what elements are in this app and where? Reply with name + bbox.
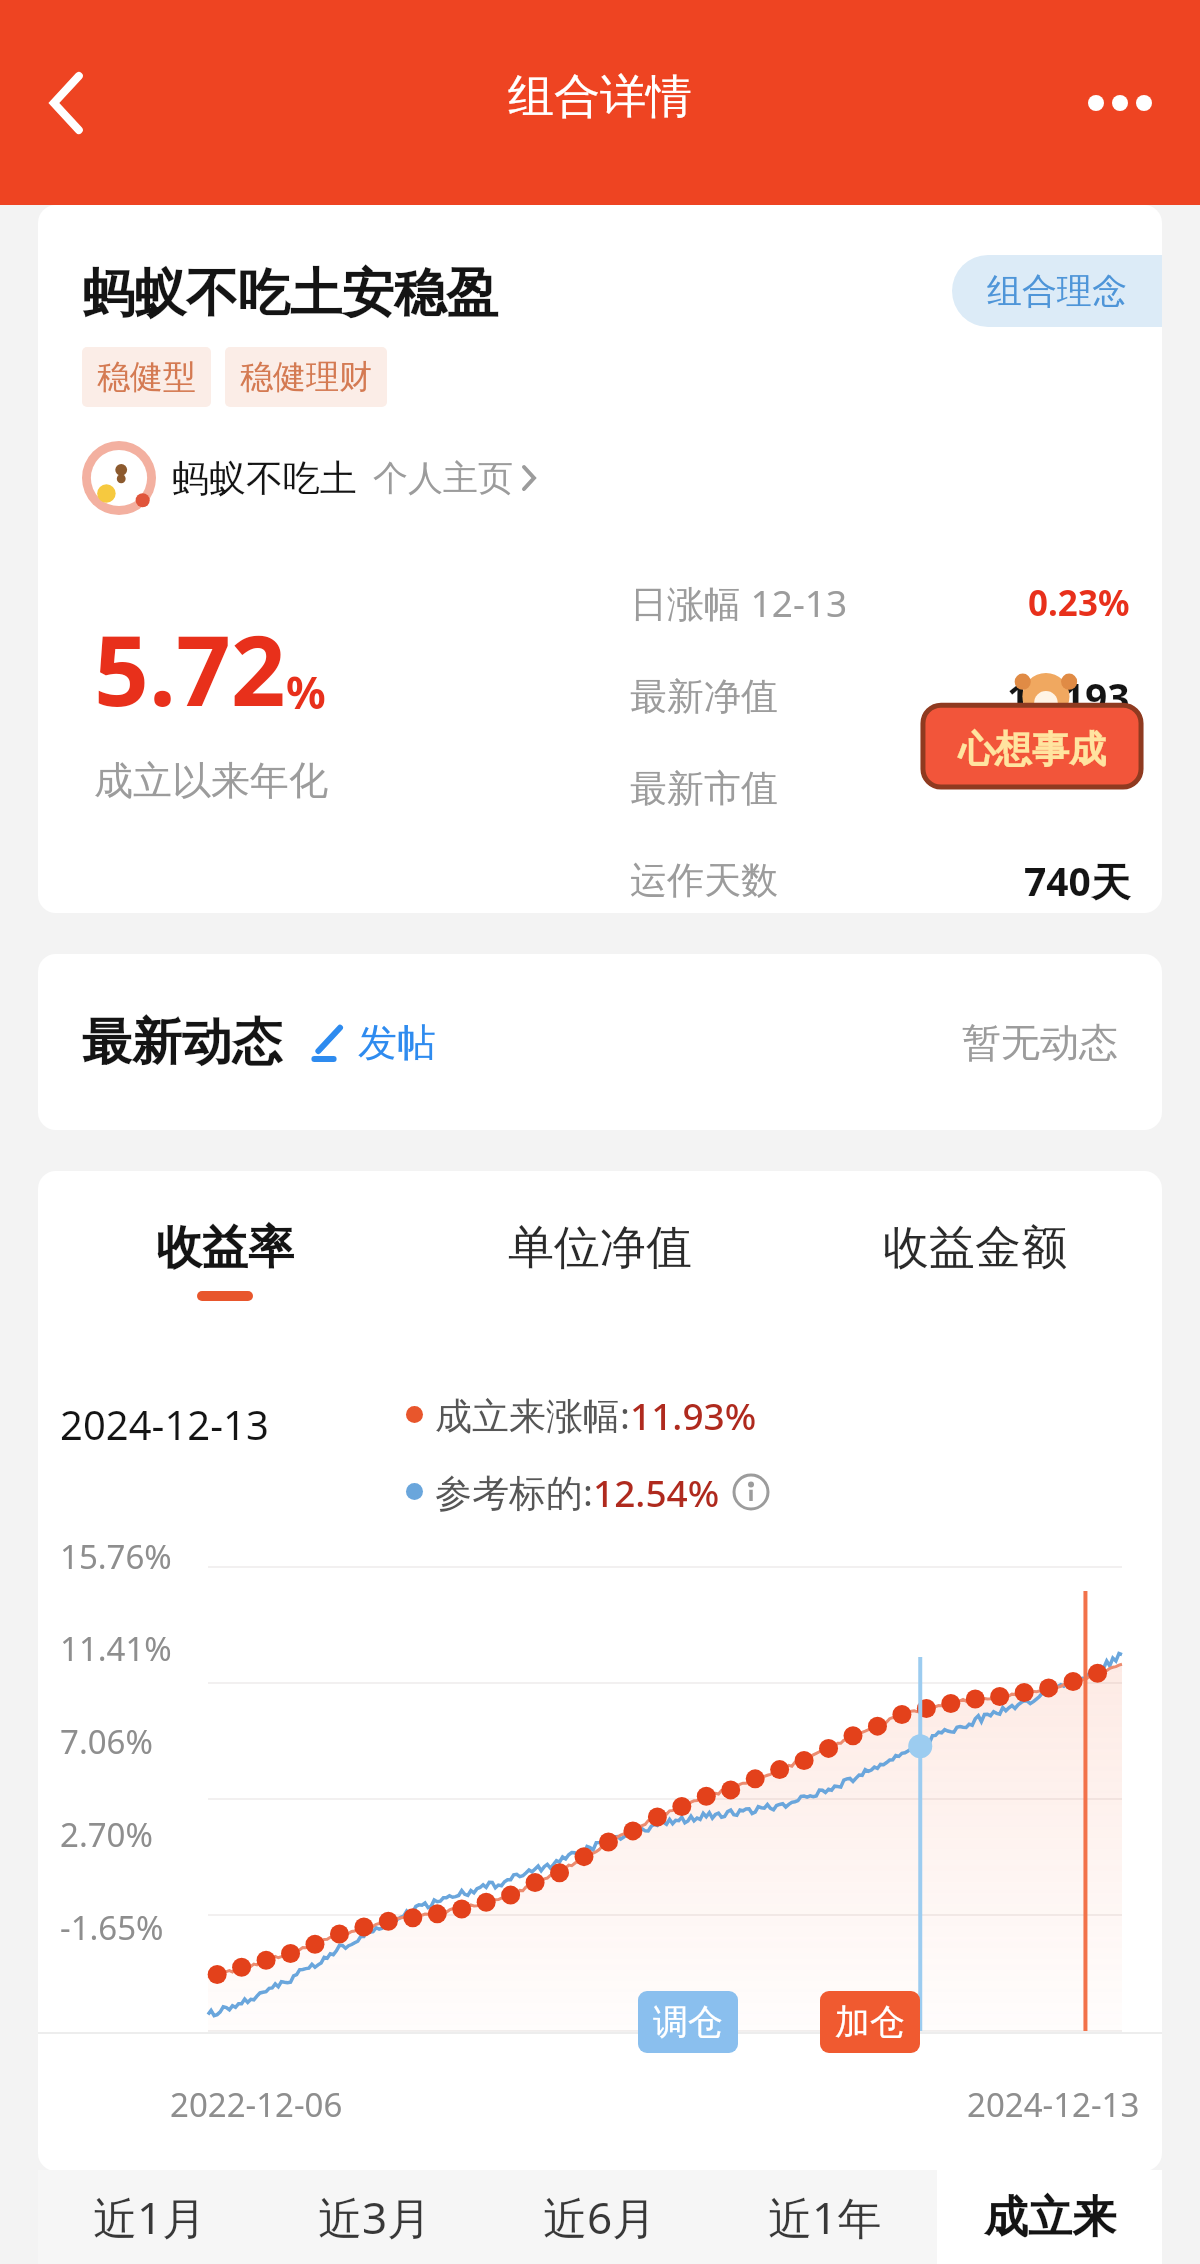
staticText: 稳健型 bbox=[97, 356, 196, 398]
button[interactable]: 收益金额 bbox=[787, 1219, 1162, 1291]
staticText: 近6月 bbox=[543, 2187, 657, 2247]
staticText: 最新净值 bbox=[630, 673, 778, 720]
staticText: 2024-12-13 bbox=[967, 2082, 1140, 2127]
button[interactable]: 发帖 bbox=[308, 1018, 436, 1067]
staticText: 暂无动态 bbox=[962, 1018, 1118, 1067]
staticText: 调仓 bbox=[653, 2000, 723, 2044]
staticText: 成立来涨幅: bbox=[435, 1389, 630, 1440]
staticText: 发帖 bbox=[358, 1018, 436, 1067]
button[interactable]: Info bbox=[732, 1473, 770, 1511]
staticText: 最新市值 bbox=[630, 765, 778, 812]
button[interactable]: Back bbox=[14, 51, 118, 155]
staticText: 心想事成 bbox=[958, 726, 1106, 773]
staticText: 740天 bbox=[1024, 854, 1130, 907]
staticText: 0.23% bbox=[1028, 579, 1130, 627]
staticText: 2.70% bbox=[60, 1812, 153, 1857]
staticText: 2022-12-06 bbox=[170, 2082, 343, 2127]
button[interactable]: 蚂蚁不吃土 bbox=[82, 441, 537, 515]
staticText: 组合详情 bbox=[508, 68, 692, 126]
button[interactable]: 单位净值 bbox=[412, 1219, 787, 1291]
staticText: 稳健理财 bbox=[240, 356, 372, 398]
button[interactable]: 成立来 bbox=[937, 2170, 1162, 2264]
button[interactable]: 近3月 bbox=[262, 2170, 487, 2264]
staticText: 7.06% bbox=[60, 1719, 153, 1764]
button[interactable]: 收益率 bbox=[38, 1219, 412, 1301]
staticText: 单位净值 bbox=[508, 1219, 692, 1277]
staticText: 近1月 bbox=[93, 2187, 207, 2247]
button[interactable]: 近1月 bbox=[38, 2170, 262, 2264]
staticText: 2024-12-13 bbox=[60, 1397, 269, 1451]
button[interactable]: 加仓 bbox=[820, 1991, 920, 2053]
staticText: 运作天数 bbox=[630, 857, 778, 904]
staticText: 5.72 bbox=[94, 603, 286, 734]
staticText: 近1年 bbox=[768, 2187, 882, 2247]
button[interactable]: More options bbox=[1068, 51, 1172, 155]
staticText: 近3月 bbox=[318, 2187, 432, 2247]
staticText: 组合理念 bbox=[987, 269, 1127, 313]
staticText: 12.54% bbox=[593, 1467, 720, 1517]
staticText: 加仓 bbox=[835, 2000, 905, 2044]
button[interactable]: 近6月 bbox=[487, 2170, 712, 2264]
button[interactable]: 组合理念 bbox=[952, 255, 1162, 327]
staticText: 收益率 bbox=[156, 1219, 294, 1277]
staticText: 个人主页 bbox=[373, 456, 513, 500]
staticText: 收益金额 bbox=[883, 1219, 1067, 1277]
staticText: 成立来 bbox=[984, 2190, 1116, 2245]
staticText: 蚂蚁不吃土安稳盈 bbox=[82, 261, 498, 327]
staticText: 最新动态 bbox=[82, 1011, 282, 1074]
staticText: 11.93% bbox=[630, 1390, 757, 1440]
staticText: -1.65% bbox=[60, 1905, 164, 1950]
staticText: 参考标的: bbox=[435, 1466, 593, 1517]
staticText: 11.41% bbox=[60, 1626, 172, 1671]
staticText: 1.1193 bbox=[1007, 670, 1130, 723]
staticText: 蚂蚁不吃土 bbox=[172, 455, 357, 502]
staticText: 日涨幅 12-13 bbox=[630, 577, 848, 628]
staticText: 成立以来年化 bbox=[94, 756, 328, 805]
staticText: % bbox=[286, 662, 326, 722]
button[interactable]: 近1年 bbox=[712, 2170, 937, 2264]
staticText: 15.76% bbox=[60, 1534, 172, 1579]
button[interactable]: 调仓 bbox=[638, 1991, 738, 2053]
